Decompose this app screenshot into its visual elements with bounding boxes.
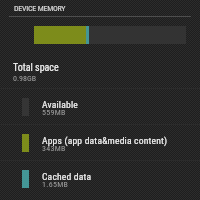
- staticText: 1.65MB: [42, 180, 69, 189]
- button[interactable]: Available: [0, 88, 200, 124]
- staticText: DEVICE MEMORY: [14, 4, 66, 13]
- button[interactable]: Apps (app data&media content): [0, 124, 200, 160]
- staticText: Cached data: [42, 171, 92, 182]
- staticText: Total space: [13, 62, 59, 74]
- staticText: Available: [42, 99, 78, 110]
- staticText: 0.98GB: [13, 74, 37, 83]
- staticText: 559MB: [42, 108, 66, 117]
- button[interactable]: Cached data: [0, 160, 200, 196]
- staticText: 343MB: [42, 144, 66, 153]
- staticText: Apps (app data&media content): [42, 135, 168, 146]
